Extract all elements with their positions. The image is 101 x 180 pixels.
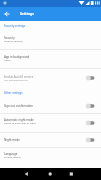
staticText: Security settings [4,39,23,42]
staticText: App in background [4,55,30,59]
button[interactable]: Enable Autofill service [0,69,101,87]
staticText: Security [4,36,15,40]
staticText: Switch to dark color at night [4,121,36,124]
button[interactable]: Night mode [0,133,101,147]
button[interactable]: Back [0,168,33,180]
staticText: Enable Autofill service [4,75,34,79]
staticText: Language [4,152,18,156]
button[interactable]: App in background [0,50,101,68]
button[interactable]: Automatic night mode [0,114,101,132]
staticText: Sign out confirmation [4,104,34,108]
staticText: Automatic night mode [4,118,34,122]
staticText: Not implemented yet [4,78,28,81]
button[interactable]: Back [0,7,13,21]
button[interactable]: Security [0,30,101,49]
staticText: Other settings [4,91,23,95]
button[interactable]: Language [0,148,101,165]
staticText: Settings [20,11,34,16]
staticText: System setting [4,155,21,158]
button[interactable]: Sign out confirmation [0,99,101,113]
staticText: Security settings [4,24,26,28]
button[interactable]: Home [33,168,67,180]
staticText: Night mode [4,138,20,142]
button[interactable]: Recent apps [67,168,101,180]
staticText: Never [4,58,11,61]
